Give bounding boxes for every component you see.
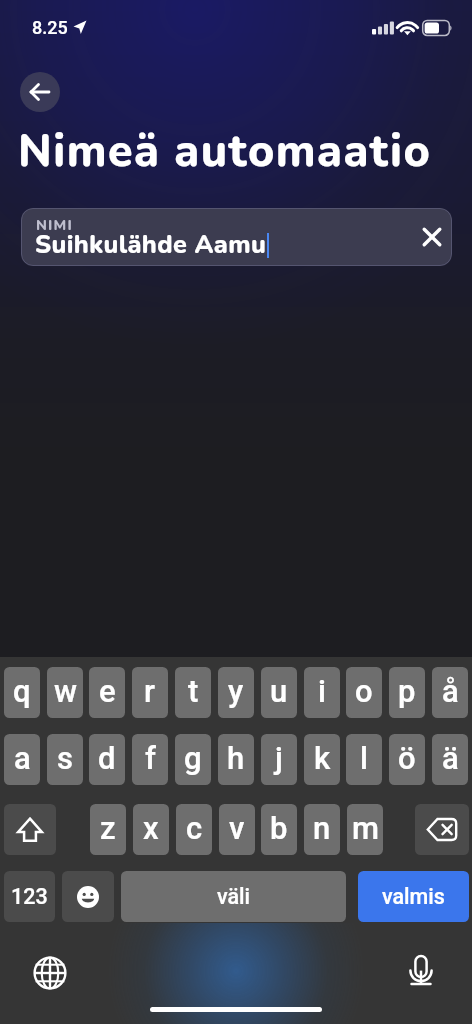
staticText: j <box>275 740 283 776</box>
button[interactable]: e <box>89 667 125 718</box>
button[interactable]: c <box>176 804 212 855</box>
button[interactable]: Dictate <box>401 951 441 991</box>
staticText: ä <box>442 740 459 776</box>
staticText: e <box>99 673 116 709</box>
staticText: n <box>313 810 331 846</box>
button[interactable]: x <box>133 804 169 855</box>
button[interactable]: u <box>261 667 297 718</box>
button[interactable]: f <box>132 734 168 785</box>
staticText: q <box>13 673 31 709</box>
staticText: k <box>314 740 331 776</box>
staticText: Nimeä automaatio <box>18 121 432 182</box>
button[interactable]: g <box>175 734 211 785</box>
button[interactable]: y <box>218 667 254 718</box>
button[interactable]: å <box>432 667 468 718</box>
staticText: h <box>227 740 245 776</box>
button[interactable]: Back <box>20 72 60 112</box>
staticText: NIMI <box>36 215 73 235</box>
button[interactable]: l <box>346 734 382 785</box>
staticText: f <box>145 740 156 776</box>
button[interactable]: 123 <box>4 871 55 922</box>
staticText: l <box>360 740 368 776</box>
staticText: i <box>318 673 326 709</box>
staticText: t <box>188 673 199 709</box>
button[interactable]: q <box>4 667 40 718</box>
button[interactable]: k <box>304 734 340 785</box>
button[interactable]: Emoji <box>62 871 114 922</box>
button[interactable]: z <box>90 804 126 855</box>
button[interactable]: a <box>4 734 40 785</box>
button[interactable]: j <box>261 734 297 785</box>
button[interactable]: NIMI <box>21 208 452 266</box>
staticText: c <box>186 810 203 846</box>
staticText: a <box>14 740 31 776</box>
staticText: m <box>352 810 379 846</box>
button[interactable]: n <box>304 804 340 855</box>
button[interactable]: b <box>261 804 297 855</box>
button[interactable]: h <box>218 734 254 785</box>
button[interactable]: t <box>175 667 211 718</box>
staticText: z <box>100 810 116 846</box>
staticText: v <box>229 810 245 846</box>
staticText: väli <box>217 884 251 909</box>
button[interactable]: o <box>346 667 382 718</box>
staticText: Suihkulähde Aamu <box>35 228 267 262</box>
staticText: y <box>228 673 244 709</box>
button[interactable]: w <box>47 667 83 718</box>
button[interactable]: Clear text <box>414 219 450 255</box>
button[interactable]: r <box>132 667 168 718</box>
staticText: s <box>57 740 73 776</box>
staticText: p <box>398 673 416 709</box>
staticText: o <box>355 673 373 709</box>
button[interactable]: p <box>389 667 425 718</box>
button[interactable]: ö <box>389 734 425 785</box>
staticText: d <box>98 740 116 776</box>
staticText: 8.25 <box>32 17 68 38</box>
button[interactable]: v <box>219 804 255 855</box>
staticText: u <box>270 673 288 709</box>
staticText: b <box>270 810 288 846</box>
button[interactable]: valmis <box>358 871 469 922</box>
button[interactable]: Backspace <box>415 804 469 855</box>
button[interactable]: d <box>89 734 125 785</box>
staticText: valmis <box>382 884 445 909</box>
staticText: w <box>54 673 77 709</box>
button[interactable]: Change keyboard language <box>30 953 70 993</box>
staticText: g <box>184 740 202 776</box>
button[interactable]: ä <box>432 734 468 785</box>
staticText: x <box>143 810 159 846</box>
staticText: r <box>144 673 156 709</box>
staticText: ö <box>398 740 416 776</box>
button[interactable]: Shift <box>4 804 56 855</box>
button[interactable]: i <box>304 667 340 718</box>
button[interactable]: m <box>347 804 383 855</box>
staticText: å <box>442 673 459 709</box>
staticText: 123 <box>11 884 48 909</box>
button[interactable]: s <box>47 734 83 785</box>
button[interactable]: väli <box>121 871 346 922</box>
